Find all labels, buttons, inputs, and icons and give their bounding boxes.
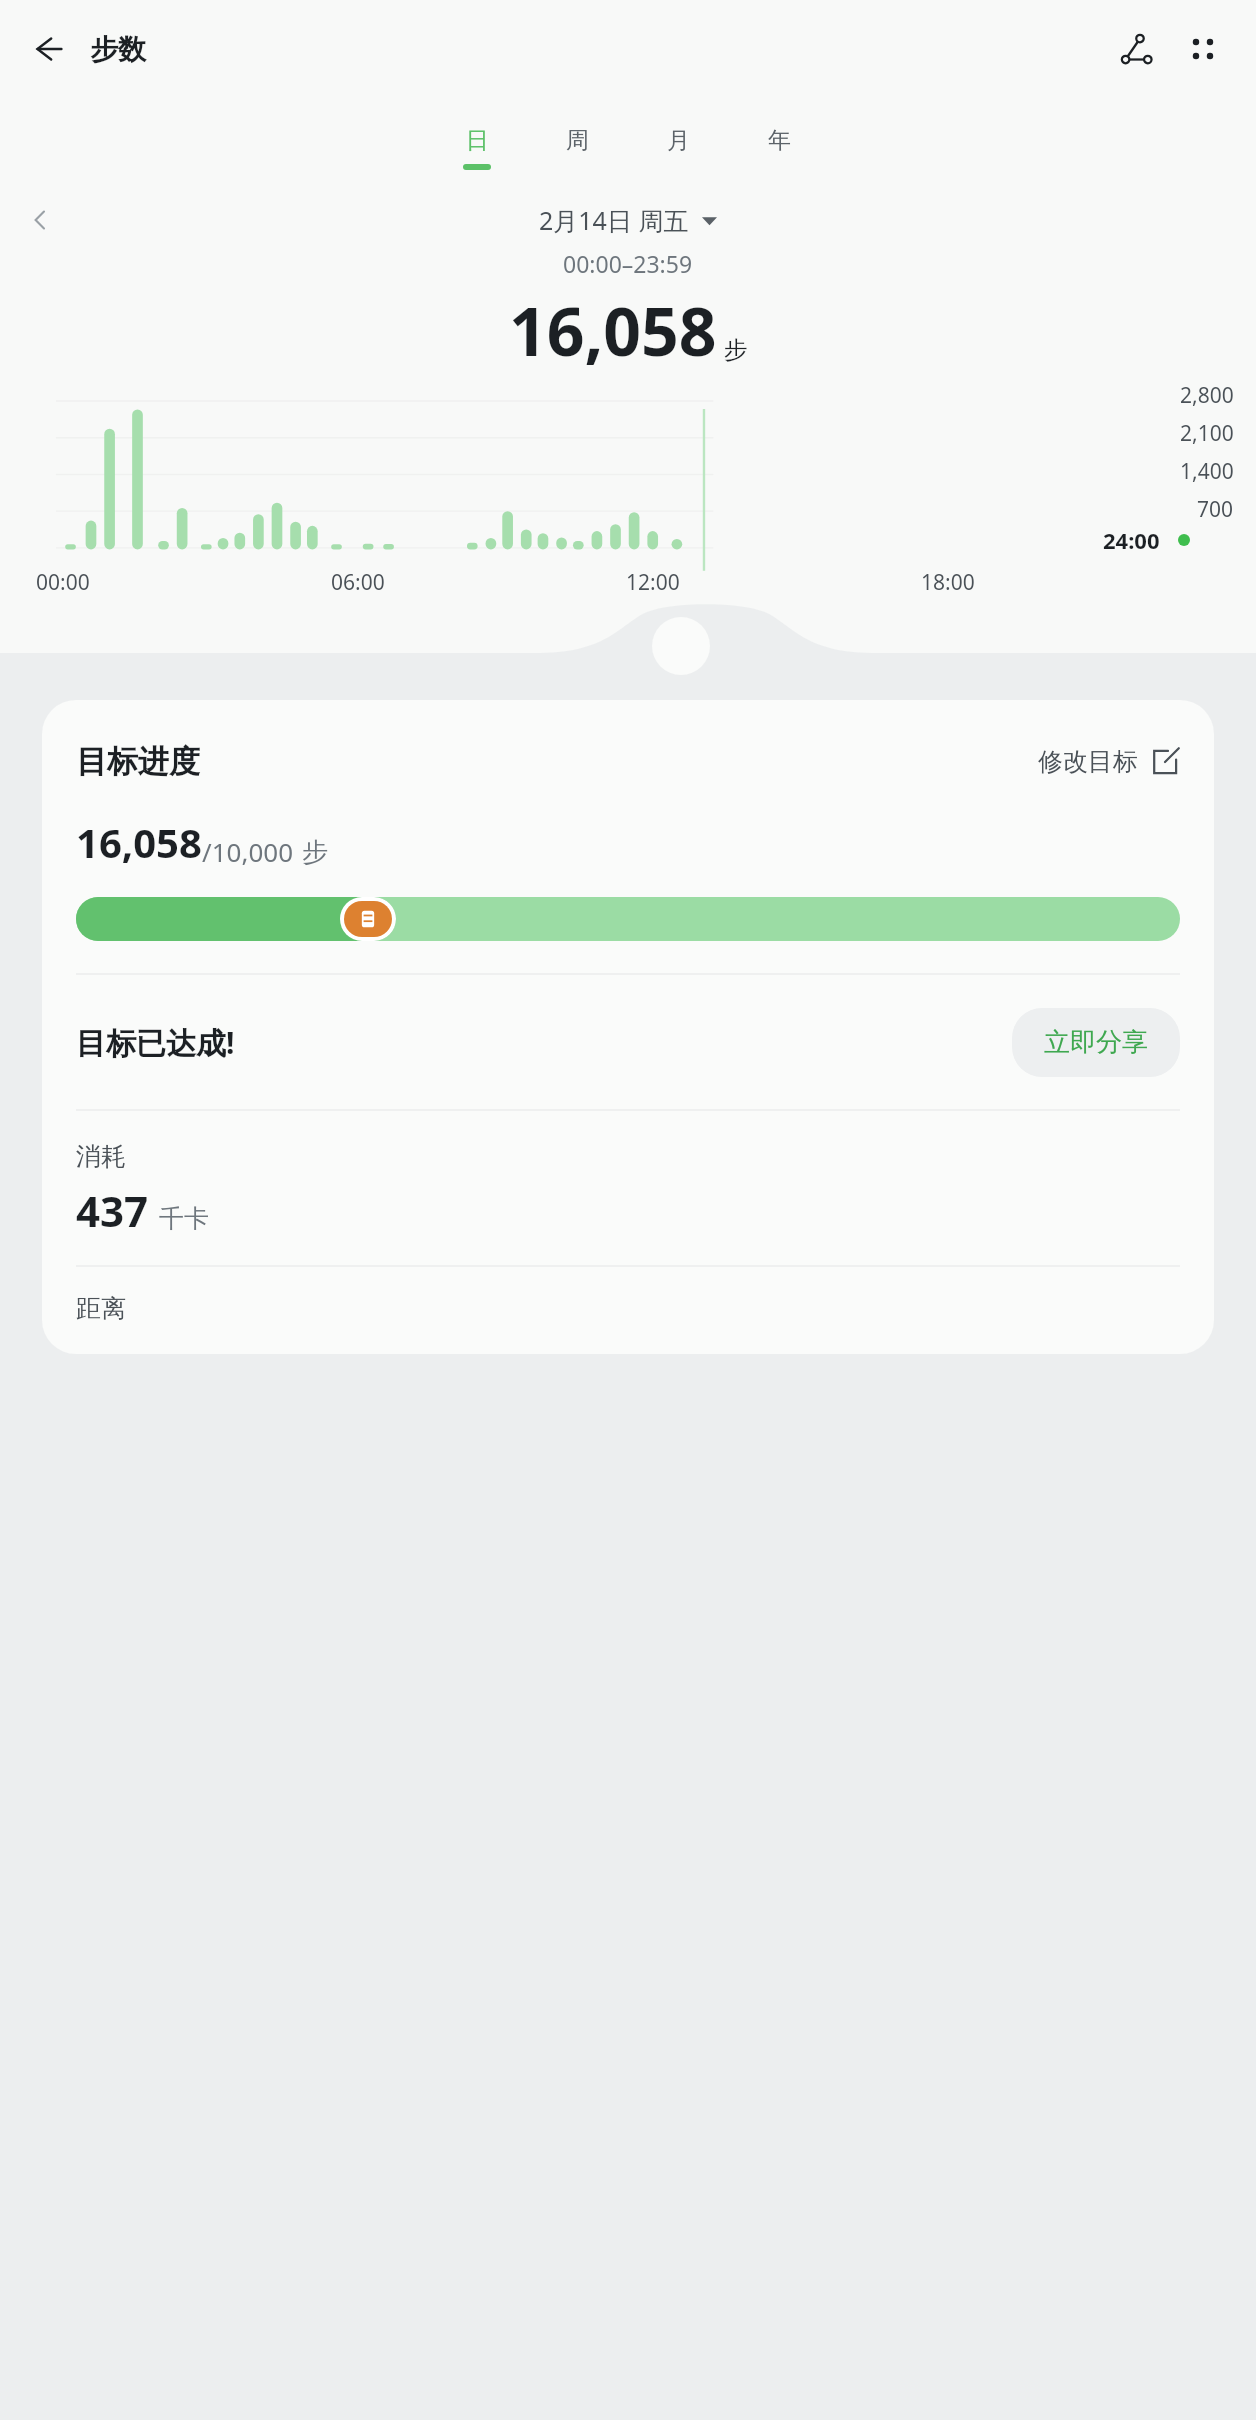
button[interactable]: 修改目标	[1038, 746, 1180, 777]
staticText: 修改目标	[1038, 746, 1138, 777]
staticText: 2,800	[1180, 381, 1234, 410]
staticText: 目标已达成!	[76, 1022, 235, 1063]
staticText: 18:00	[921, 568, 975, 597]
staticText: 距离	[76, 1293, 126, 1324]
button[interactable]: 年	[729, 126, 830, 188]
staticText: 437	[76, 1182, 149, 1239]
staticText: 千卡	[159, 1203, 209, 1234]
staticText: 16,058	[76, 815, 202, 869]
staticText: 24:00	[1103, 525, 1160, 555]
button[interactable]: 日	[426, 126, 527, 188]
staticText: 700	[1197, 495, 1234, 524]
button[interactable]: Share	[1108, 20, 1166, 78]
staticText: 消耗	[76, 1141, 126, 1172]
button[interactable]: Expand	[652, 617, 710, 675]
button[interactable]: 2月14日 周五	[539, 203, 717, 237]
button[interactable]: Back	[20, 21, 76, 77]
staticText: 周	[566, 126, 589, 155]
staticText: 2,100	[1180, 419, 1234, 448]
staticText: 2月14日 周五	[539, 203, 689, 237]
staticText: 月	[667, 126, 690, 155]
button[interactable]: 周	[527, 126, 628, 188]
staticText: 目标进度	[76, 742, 200, 781]
staticText: 06:00	[331, 568, 385, 597]
staticText: 步数	[90, 32, 146, 67]
button[interactable]: 月	[628, 126, 729, 188]
button[interactable]: More options	[1174, 20, 1232, 78]
staticText: 日	[466, 126, 489, 155]
staticText: 16,058	[509, 285, 717, 375]
button[interactable]: Previous day	[12, 192, 68, 248]
staticText: 12:00	[626, 568, 680, 597]
staticText: 年	[768, 126, 791, 155]
staticText: /10,000	[202, 834, 294, 869]
staticText: 步	[302, 836, 328, 869]
staticText: 00:00–23:59	[563, 248, 693, 279]
staticText: 立即分享	[1044, 1026, 1148, 1059]
staticText: 步	[724, 335, 748, 365]
staticText: 00:00	[36, 568, 90, 597]
button[interactable]: 立即分享	[1012, 1008, 1180, 1077]
staticText: 1,400	[1180, 457, 1234, 486]
